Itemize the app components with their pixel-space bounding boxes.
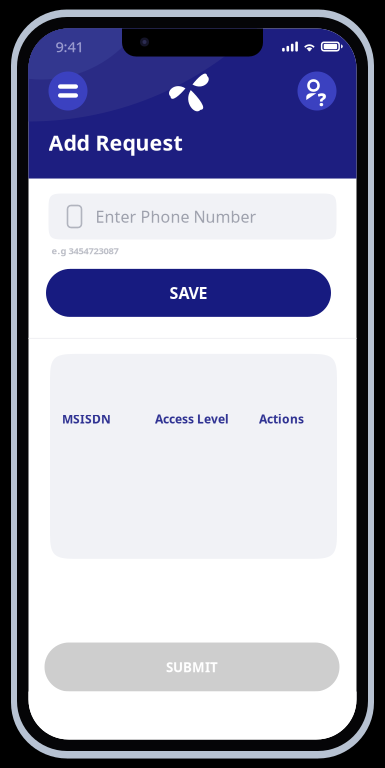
staticText: 9:41: [55, 37, 83, 56]
button[interactable]: Menu: [48, 71, 87, 110]
staticText: MSISDN: [62, 411, 111, 427]
staticText: SAVE: [169, 282, 207, 303]
staticText: Add Request: [48, 128, 182, 157]
staticText: Access Level: [155, 411, 229, 427]
button[interactable]: SUBMIT: [44, 642, 339, 691]
staticText: Enter Phone Number: [95, 206, 256, 227]
staticText: e.g 3454723087: [51, 244, 118, 257]
staticText: ?: [317, 88, 326, 111]
staticText: Actions: [259, 411, 304, 427]
button[interactable]: Help and support: [297, 71, 336, 110]
staticText: SUBMIT: [166, 658, 218, 676]
button[interactable]: SAVE: [46, 269, 331, 317]
